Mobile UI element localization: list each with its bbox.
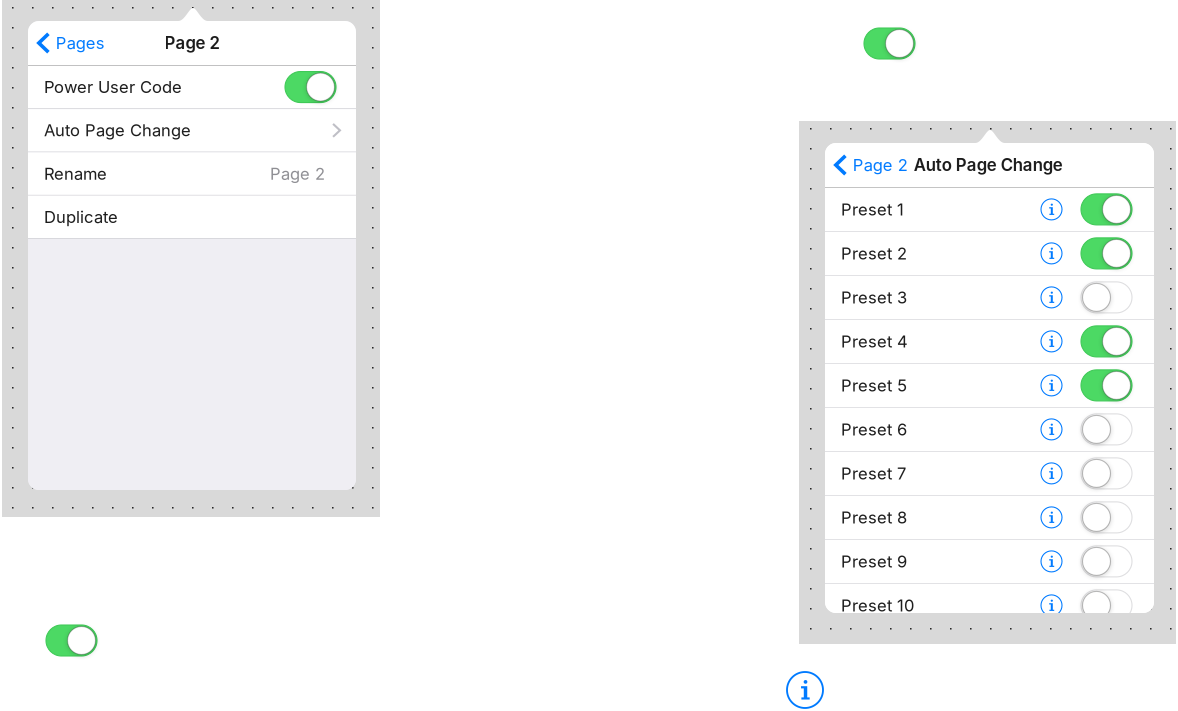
staticText: Page 2 xyxy=(164,33,219,53)
button[interactable]: Switch on xyxy=(864,28,915,59)
staticText: Page 2 xyxy=(270,164,325,184)
button[interactable]: Auto Page Change xyxy=(28,109,356,152)
button[interactable]: Preset 4 xyxy=(825,320,1154,363)
staticText: Auto Page Change xyxy=(44,120,191,140)
button[interactable]: Preset 2 xyxy=(825,232,1154,275)
button[interactable]: Preset 7 xyxy=(825,452,1154,495)
staticText: Preset 7 xyxy=(841,463,906,483)
button[interactable]: Rename xyxy=(28,152,356,195)
button[interactable]: Duplicate xyxy=(28,196,356,238)
staticText: Page 2 xyxy=(853,155,908,175)
button[interactable]: Preset 5 xyxy=(825,364,1154,407)
button[interactable]: Preset 6 xyxy=(825,408,1154,451)
staticText: Preset 5 xyxy=(841,375,907,395)
button[interactable]: Preset 3 xyxy=(825,276,1154,319)
staticText: Power User Code xyxy=(44,77,182,97)
staticText: Preset 3 xyxy=(841,287,907,307)
button[interactable]: Power User Code xyxy=(28,66,356,108)
staticText: Pages xyxy=(56,33,105,53)
staticText: Preset 2 xyxy=(841,243,907,263)
staticText: Preset 10 xyxy=(841,595,914,615)
staticText: Preset 8 xyxy=(841,507,907,527)
staticText: Preset 4 xyxy=(841,331,908,351)
button[interactable]: Preset 8 xyxy=(825,496,1154,539)
button[interactable]: Preset 10 xyxy=(825,584,1154,627)
staticText: Duplicate xyxy=(44,207,118,227)
button[interactable]: Page 2 xyxy=(825,143,908,187)
button[interactable]: Preset 9 xyxy=(825,540,1154,583)
staticText: Preset 6 xyxy=(841,419,907,439)
staticText: Auto Page Change xyxy=(914,155,1063,175)
staticText: Preset 9 xyxy=(841,551,907,571)
button[interactable]: Info xyxy=(787,672,823,708)
staticText: Preset 1 xyxy=(841,199,904,219)
button[interactable]: Switch on xyxy=(46,625,97,656)
button[interactable]: Preset 1 xyxy=(825,188,1154,231)
staticText: Rename xyxy=(44,164,107,184)
button[interactable]: Pages xyxy=(28,21,115,65)
